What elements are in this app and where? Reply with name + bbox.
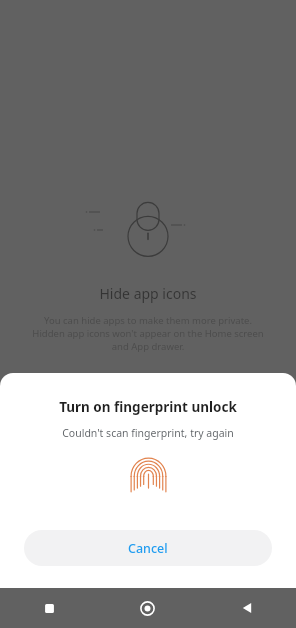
staticText: Cancel	[128, 540, 168, 557]
button[interactable]: Cancel	[24, 530, 272, 566]
staticText: Turn on fingerprint unlock	[0, 398, 296, 416]
staticText: You can hide apps to make them more priv…	[32, 314, 264, 353]
button[interactable]: Home	[98, 588, 197, 628]
staticText: Couldn't scan fingerprint, try again	[0, 426, 296, 440]
button[interactable]: Recent apps	[0, 588, 98, 628]
staticText: Hide app icons	[99, 284, 197, 303]
button[interactable]: Back	[197, 588, 296, 628]
